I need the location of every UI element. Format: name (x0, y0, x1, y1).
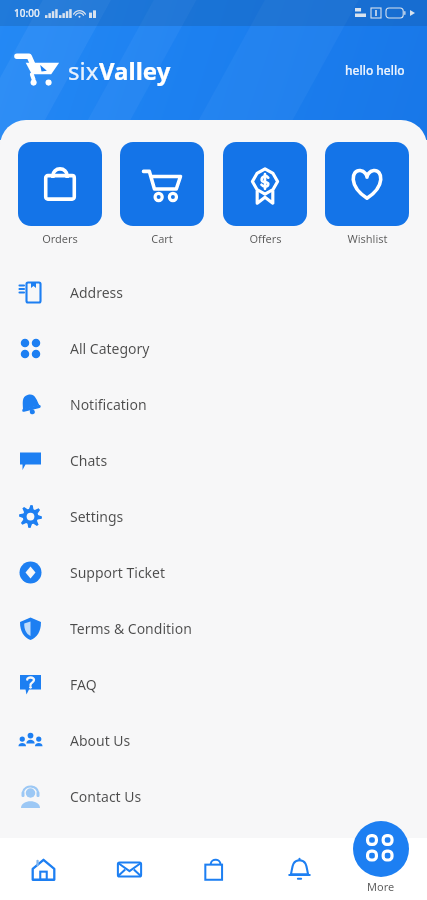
button[interactable]: Orders (18, 142, 102, 246)
staticText: Terms & Condition (70, 619, 192, 638)
button[interactable]: Chats (0, 432, 427, 488)
button[interactable]: Shop (172, 838, 257, 900)
staticText: Notification (70, 395, 147, 414)
button[interactable]: Settings (0, 488, 427, 544)
staticText: Settings (70, 507, 124, 526)
button[interactable]: Support Ticket (0, 544, 427, 600)
button[interactable]: Wishlist (325, 142, 409, 246)
button[interactable]: Terms & Condition (0, 600, 427, 656)
staticText: Cart (151, 231, 173, 246)
button[interactable]: About Us (0, 712, 427, 768)
button[interactable]: Contact Us (0, 768, 427, 824)
button[interactable]: Cart (120, 142, 204, 246)
button[interactable]: FAQ (0, 656, 427, 712)
button[interactable]: Notification (0, 376, 427, 432)
button[interactable]: Notifications (257, 838, 342, 900)
staticText: Chats (70, 451, 108, 470)
staticText: About Us (70, 731, 131, 750)
staticText: More (367, 879, 395, 894)
staticText: six (68, 54, 99, 87)
staticText: Offers (249, 231, 282, 246)
staticText: Wishlist (347, 231, 388, 246)
staticText: 10:00 (14, 6, 40, 20)
button[interactable]: Messages (86, 838, 172, 900)
button[interactable]: Home (0, 838, 86, 900)
staticText: FAQ (70, 675, 97, 694)
staticText: Contact Us (70, 787, 142, 806)
button[interactable]: All Category (0, 320, 427, 376)
button[interactable]: Address (0, 264, 427, 320)
staticText: Support Ticket (70, 563, 166, 582)
button[interactable]: hello hello (341, 58, 409, 82)
button[interactable]: More (353, 821, 409, 894)
staticText: Orders (42, 231, 78, 246)
button[interactable]: Offers (223, 142, 307, 246)
staticText: All Category (70, 339, 150, 358)
staticText: Valley (99, 54, 171, 87)
staticText: Address (70, 283, 123, 302)
staticText: hello hello (345, 62, 405, 78)
